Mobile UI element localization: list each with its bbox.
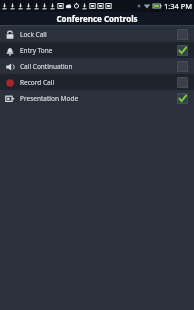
staticText: Entry Tone	[20, 46, 177, 55]
button[interactable]: Unchecked	[177, 77, 188, 88]
button[interactable]: Unchecked	[177, 61, 188, 72]
staticText: Conference Controls	[56, 13, 138, 24]
button[interactable]: Checked	[177, 93, 188, 104]
button[interactable]: Entry Tone	[0, 42, 194, 58]
button[interactable]: Unchecked	[177, 29, 188, 40]
staticText: Lock Call	[20, 30, 177, 39]
staticText: Presentation Mode	[20, 94, 177, 103]
button[interactable]: Call Continuation	[0, 58, 194, 74]
button[interactable]: Record Call	[0, 74, 194, 90]
staticText: Record Call	[20, 78, 177, 87]
button[interactable]: Presentation Mode	[0, 90, 194, 106]
staticText: 1:34 PM	[164, 1, 193, 11]
button[interactable]: Lock Call	[0, 26, 194, 42]
staticText: Call Continuation	[20, 62, 177, 71]
button[interactable]: Checked	[177, 45, 188, 56]
